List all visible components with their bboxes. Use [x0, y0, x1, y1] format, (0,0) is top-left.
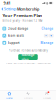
staticText: Membership: [17, 6, 39, 12]
staticText: Change: [42, 27, 54, 31]
staticText: Cloud storage: [8, 27, 29, 31]
staticText: Support: [8, 41, 20, 45]
button[interactable]: Activity: [19, 91, 37, 100]
staticText: Activity: [23, 96, 32, 99]
staticText: Account: [43, 96, 51, 99]
button[interactable]: Home: [0, 91, 19, 100]
staticText: Your Premium Plan: [2, 12, 42, 18]
button[interactable]: Manage plan: [18, 54, 38, 60]
button[interactable]: Account: [37, 91, 56, 100]
staticText: Settings: [4, 7, 17, 11]
staticText: Purchase renews automatically: [8, 49, 47, 52]
staticText: Team seats: [8, 34, 24, 38]
staticText: Home: [6, 96, 12, 99]
staticText: 9:41: [3, 0, 10, 6]
button[interactable]: Cloud storage: [2, 25, 54, 32]
staticText: Manage plan: [21, 52, 34, 62]
staticText: Billed yearly · Renews 12 Mar: [2, 19, 42, 23]
button[interactable]: Support: [2, 39, 54, 46]
staticText: Cancel any time in Settings › Subscripti…: [5, 61, 50, 65]
staticText: Manage: [41, 41, 54, 45]
button[interactable]: Team seats: [2, 32, 54, 39]
button[interactable]: Back to Settings: [0, 6, 18, 12]
